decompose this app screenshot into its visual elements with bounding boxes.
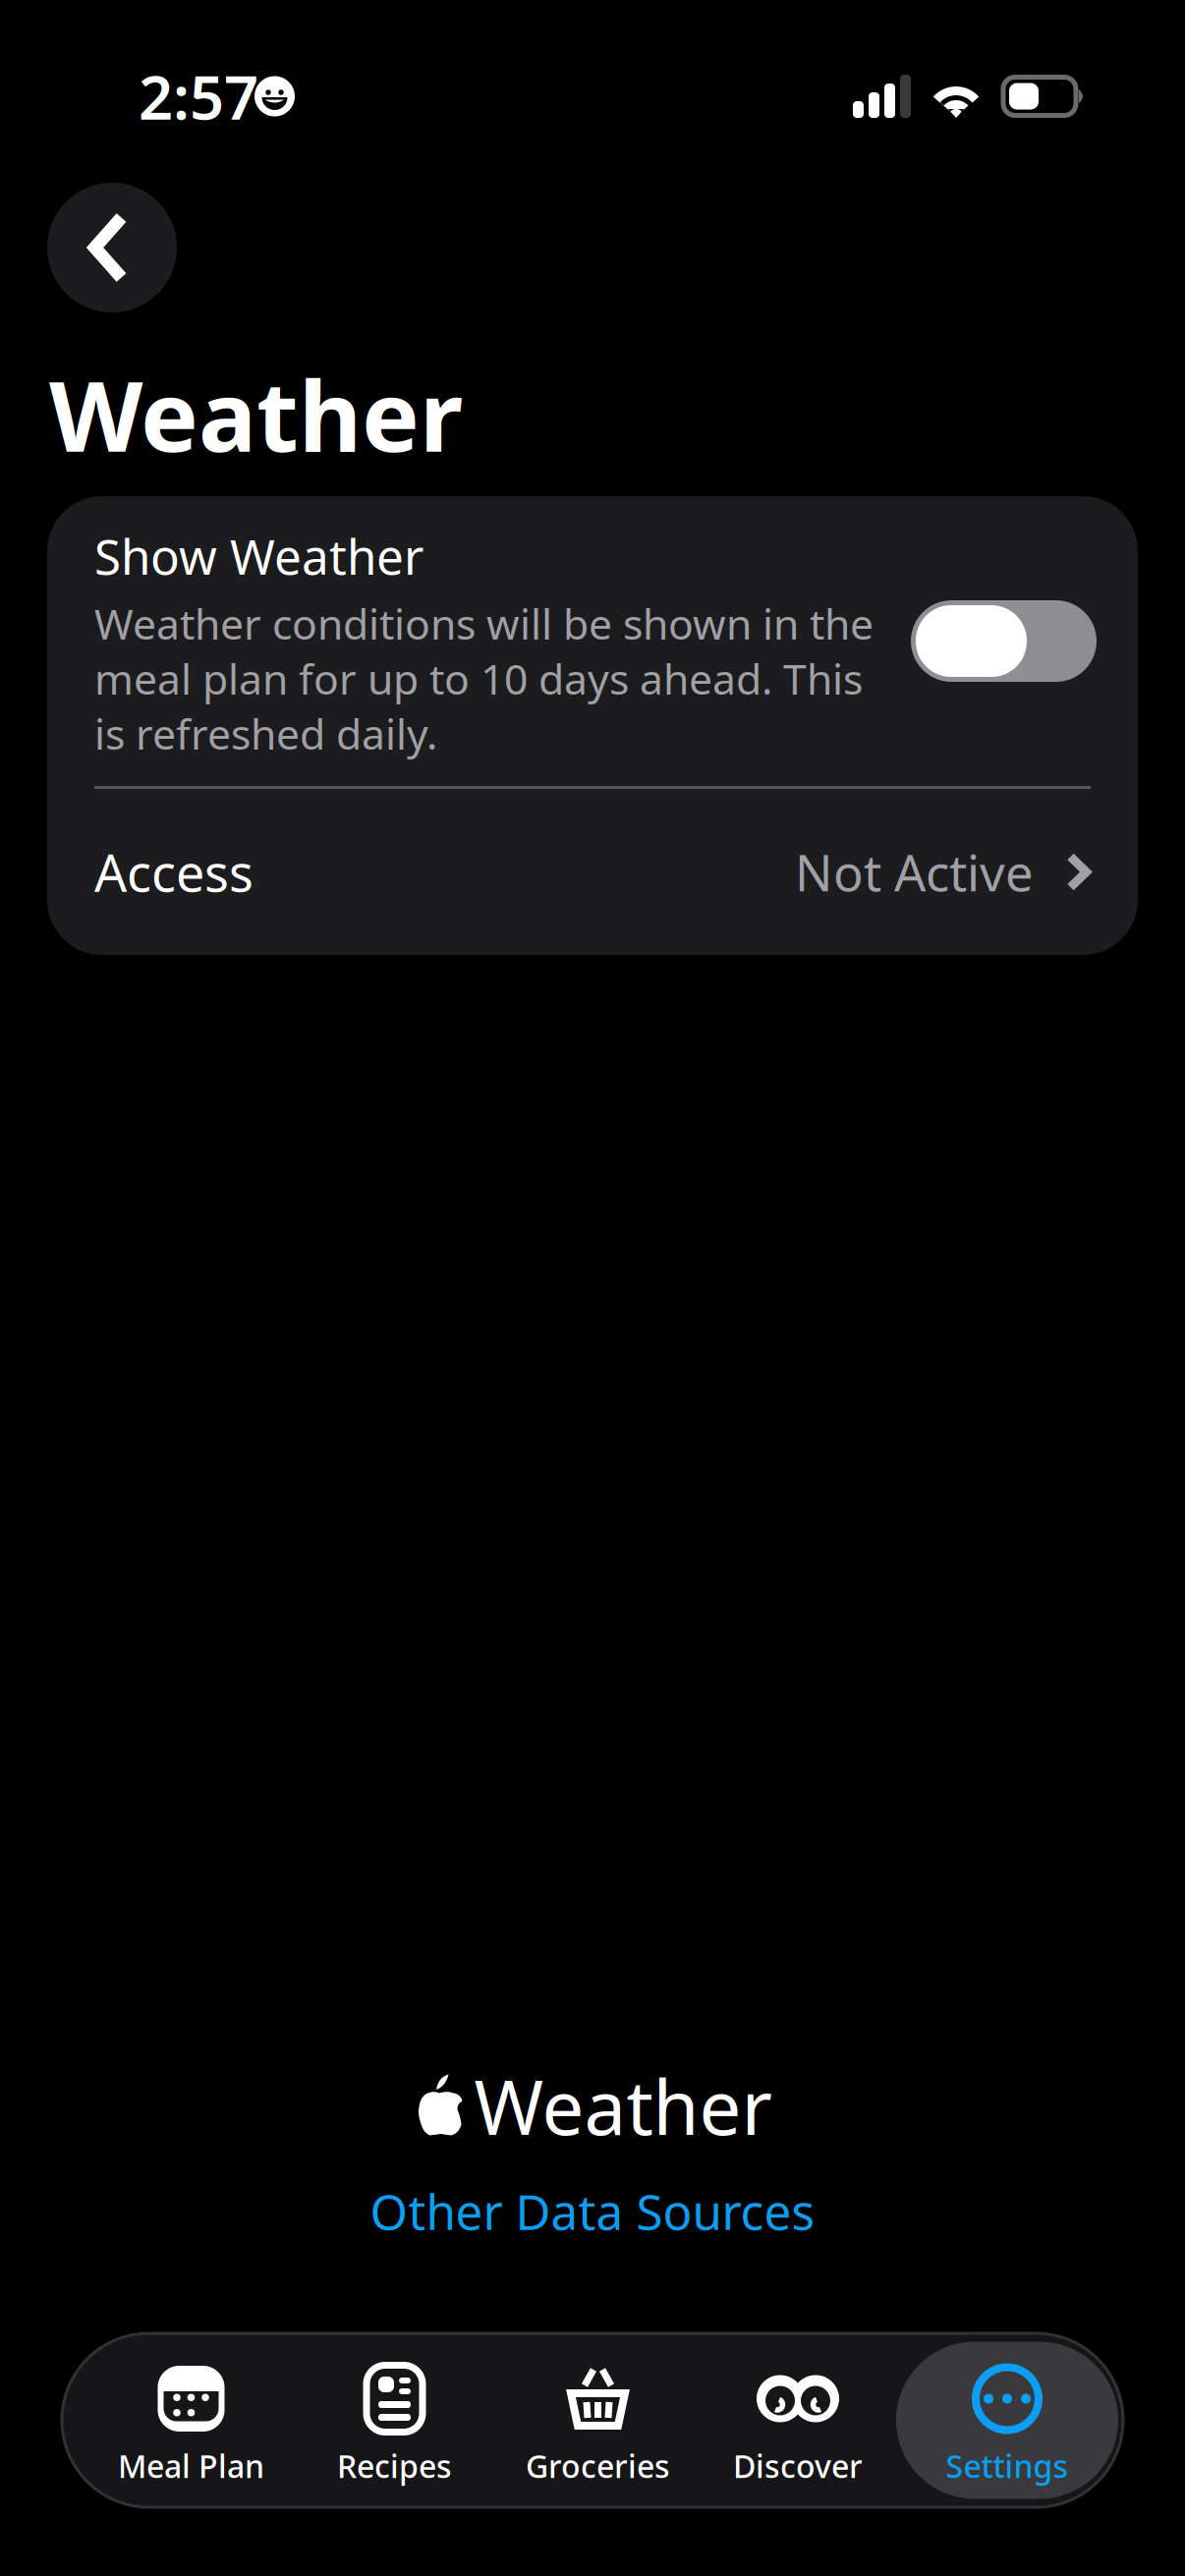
staticText: Weather: [474, 2056, 772, 2155]
button[interactable]: Discover: [700, 2342, 896, 2499]
staticText: Recipes: [337, 2445, 452, 2487]
staticText: Groceries: [526, 2445, 670, 2487]
button[interactable]: Back: [47, 183, 177, 312]
staticText: Other Data Sources: [370, 2179, 815, 2243]
staticText: Weather conditions will be shown in the: [94, 595, 874, 651]
button[interactable]: Other Data Sources: [346, 2165, 839, 2257]
button[interactable]: Settings: [896, 2342, 1118, 2499]
staticText: Access: [94, 838, 254, 906]
staticText: 2:57: [139, 56, 258, 136]
staticText: Not Active: [795, 839, 1034, 905]
staticText: meal plan for up to 10 days ahead. This: [94, 650, 863, 706]
staticText: Weather: [49, 350, 463, 478]
staticText: Show Weather: [94, 524, 423, 588]
staticText: Settings: [946, 2445, 1069, 2487]
button[interactable]: Meal Plan: [89, 2342, 293, 2499]
button[interactable]: Groceries: [496, 2342, 700, 2499]
button[interactable]: Recipes: [293, 2342, 496, 2499]
staticText: Discover: [733, 2445, 863, 2487]
staticText: Meal Plan: [118, 2445, 264, 2487]
button[interactable]: Show Weather: [911, 600, 1097, 682]
staticText: is refreshed daily.: [94, 705, 437, 761]
